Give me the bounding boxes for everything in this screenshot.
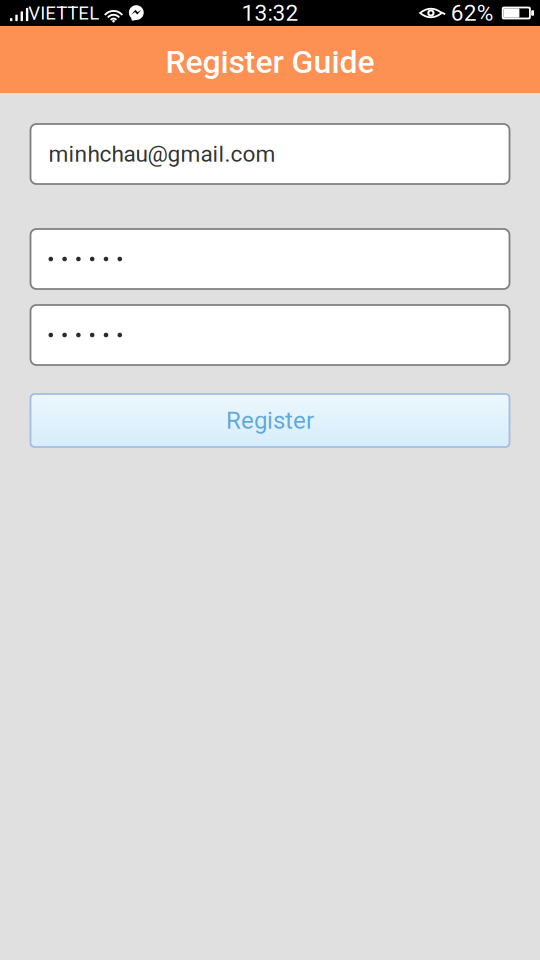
staticText: Register bbox=[226, 406, 314, 434]
staticText: Register Guide bbox=[165, 43, 374, 81]
button[interactable] bbox=[30, 305, 509, 365]
button[interactable] bbox=[30, 229, 509, 289]
button[interactable]: minhchau@gmail.com bbox=[30, 124, 509, 184]
staticText: 62% bbox=[451, 0, 494, 26]
staticText: minhchau@gmail.com bbox=[48, 141, 275, 167]
button[interactable]: Register bbox=[30, 394, 509, 447]
staticText: 13:32 bbox=[241, 0, 298, 26]
staticText: VIETTEL bbox=[28, 2, 99, 24]
